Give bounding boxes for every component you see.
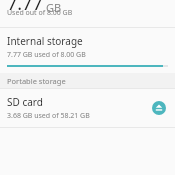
- staticText: Internal storage: [7, 34, 83, 48]
- staticText: 7.77: [7, 0, 43, 16]
- button[interactable]: Eject SD card: [149, 98, 169, 118]
- staticText: 3.68 GB used of 58.21 GB: [7, 111, 90, 121]
- button[interactable]: Internal storage: [0, 28, 175, 71]
- staticText: SD card: [7, 95, 43, 109]
- staticText: Portable storage: [7, 76, 66, 86]
- staticText: 7.77 GB used of 8.00 GB: [7, 50, 86, 60]
- button[interactable]: SD card: [0, 89, 175, 127]
- staticText: GB: [46, 0, 62, 15]
- staticText: Used out of 8.00 GB: [7, 8, 73, 18]
